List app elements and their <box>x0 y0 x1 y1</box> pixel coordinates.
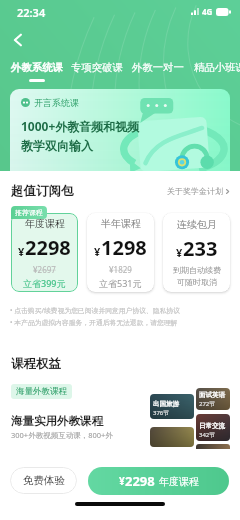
staticText: 22:34 <box>17 5 46 20</box>
button[interactable]: 日常交流 <box>196 414 230 441</box>
staticText: 关于奖学金计划 <box>167 186 223 196</box>
staticText: 342节 <box>199 431 216 439</box>
staticText: 376节 <box>153 409 170 417</box>
staticText: 2298 <box>125 472 155 490</box>
staticText: • 本产品为虚拟内容服务，开通后将无法退款，请您理解 <box>10 318 178 327</box>
staticText: ¥ <box>119 474 125 488</box>
staticText: 推荐课程 <box>15 208 43 217</box>
staticText: 免费体验 <box>23 474 65 487</box>
staticText: ¥ <box>94 244 101 259</box>
staticText: • 点击购买/续费视为您已阅读并同意用户协议、隐私协议 <box>10 306 180 315</box>
button[interactable]: 外教一对一 <box>132 61 184 79</box>
staticText: 300+外教视频互动课，800+外 <box>11 430 113 440</box>
staticText: 年度课程 <box>159 475 199 488</box>
staticText: 1298 <box>101 234 147 261</box>
button[interactable]: 免费体验 <box>10 467 77 494</box>
staticText: 专项突破课 <box>71 61 123 74</box>
button[interactable]: 半年课程 <box>87 213 154 292</box>
staticText: ¥1829 <box>109 264 132 275</box>
staticText: 272节 <box>199 400 216 408</box>
staticText: 外教一对一 <box>132 61 184 74</box>
button[interactable]: 面试英语 <box>196 388 230 410</box>
staticText: 开言系统课 <box>34 97 79 108</box>
staticText: 立省399元 <box>23 277 66 289</box>
staticText: ¥2697 <box>33 264 56 275</box>
staticText: 1000+外教音频和视频 <box>21 118 140 134</box>
button[interactable]: 出国旅游 <box>150 394 194 419</box>
staticText: 海量实用外教课程 <box>11 414 103 428</box>
staticText: 教学双向输入 <box>21 138 93 153</box>
button[interactable]: 关于奖学金计划 <box>167 186 230 196</box>
button[interactable] <box>150 427 194 447</box>
staticText: 出国旅游 <box>153 400 179 408</box>
button[interactable]: 连续包月 <box>163 213 230 292</box>
staticText: 超值订阅包 <box>11 183 74 199</box>
button[interactable]: 精品小班课 <box>194 61 240 79</box>
staticText: 到期自动续费 <box>173 265 221 275</box>
staticText: 半年课程 <box>101 217 141 230</box>
button[interactable]: Back <box>1 23 35 57</box>
staticText: 海量外教课程 <box>16 386 67 397</box>
staticText: 4G <box>202 6 213 17</box>
staticText: 年度课程 <box>25 217 65 230</box>
staticText: 面试英语 <box>199 391 225 399</box>
button[interactable]: 开言系统课 <box>10 89 230 171</box>
staticText: 外教系统课 <box>11 61 63 74</box>
staticText: 日常交流 <box>199 422 225 430</box>
button[interactable]: 外教系统课 <box>11 61 63 82</box>
staticText: 233 <box>183 235 218 262</box>
staticText: 可随时取消 <box>177 277 217 287</box>
staticText: 精品小班课 <box>194 61 240 74</box>
staticText: ¥ <box>18 244 25 259</box>
staticText: ¥ <box>176 245 183 260</box>
staticText: 课程权益 <box>11 356 61 372</box>
staticText: 2298 <box>25 234 71 261</box>
staticText: 连续包月 <box>177 218 217 231</box>
button[interactable]: 年度课程 <box>11 213 78 292</box>
button[interactable]: 专项突破课 <box>71 61 123 79</box>
staticText: 立省531元 <box>99 277 142 289</box>
button[interactable]: ¥ <box>88 467 229 495</box>
